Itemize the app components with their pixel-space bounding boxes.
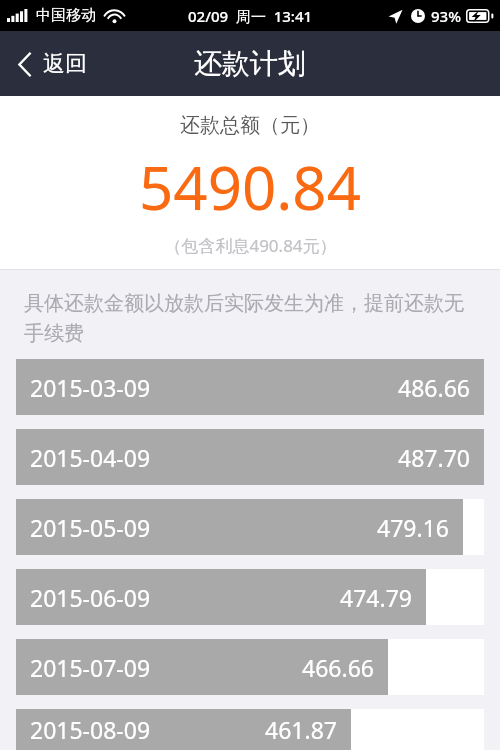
staticText: 466.66 — [302, 652, 374, 683]
staticText: 返回 — [43, 50, 87, 78]
staticText: 479.16 — [377, 512, 449, 543]
staticText: 2015-04-09 — [30, 442, 151, 473]
button[interactable]: 2015-06-09 — [16, 569, 484, 625]
button[interactable]: Back — [0, 40, 103, 88]
staticText: 02/09 周一 13:41 — [188, 6, 313, 26]
staticText: 还款计划 — [194, 46, 306, 81]
button[interactable]: 2015-08-09 — [16, 709, 484, 750]
staticText: 93% — [431, 6, 461, 26]
staticText: 2015-03-09 — [30, 372, 151, 403]
staticText: 2015-08-09 — [30, 714, 151, 745]
staticText: 2015-05-09 — [30, 512, 151, 543]
button[interactable]: 2015-03-09 — [16, 359, 484, 415]
staticText: 474.79 — [340, 582, 412, 613]
staticText: 486.66 — [398, 372, 470, 403]
staticText: （包含利息490.84元） — [164, 234, 337, 257]
button[interactable]: 2015-07-09 — [16, 639, 484, 695]
staticText: 中国移动 — [36, 6, 96, 25]
other: Back — [18, 52, 32, 77]
button[interactable]: 2015-04-09 — [16, 429, 484, 485]
staticText: 2015-07-09 — [30, 652, 151, 683]
staticText: 具体还款金额以放款后实际发生为准，提前还款无手续费 — [24, 291, 480, 346]
staticText: 461.87 — [265, 714, 337, 745]
staticText: 5490.84 — [139, 146, 361, 228]
staticText: 还款总额（元） — [180, 113, 320, 138]
staticText: 487.70 — [398, 442, 470, 473]
button[interactable]: 2015-05-09 — [16, 499, 484, 555]
staticText: 2015-06-09 — [30, 582, 151, 613]
